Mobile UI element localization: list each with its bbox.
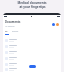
button[interactable]: Add document: [29, 65, 36, 68]
button[interactable]: Recent: [12, 30, 19, 33]
button[interactable]: [5, 55, 59, 61]
staticText: 12 records: [5, 25, 15, 28]
button[interactable]: All: [5, 30, 9, 35]
button[interactable]: Profile: [56, 23, 59, 26]
staticText: All: [5, 30, 8, 33]
staticText: Documents: [5, 20, 21, 24]
button[interactable]: [5, 61, 59, 67]
button[interactable]: Search: [52, 23, 55, 26]
staticText: Medical documents: [17, 1, 47, 5]
button[interactable]: [5, 49, 59, 55]
button[interactable]: [5, 67, 59, 72]
staticText: at your fingertips: [19, 5, 46, 9]
button[interactable]: [5, 37, 59, 43]
button[interactable]: [5, 43, 59, 49]
